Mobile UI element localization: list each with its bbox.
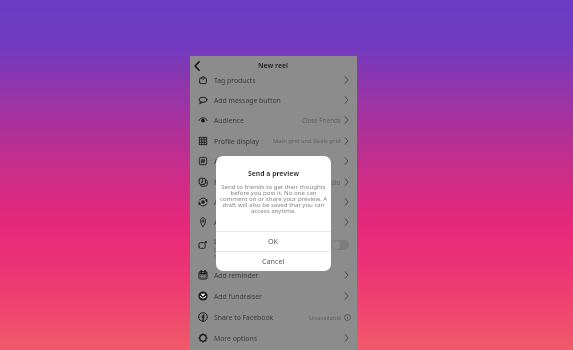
button[interactable]: Add message button: [190, 90, 357, 110]
staticText: Main grid and Reels grid: [273, 137, 341, 145]
button[interactable]: OK: [216, 232, 331, 251]
button[interactable]: Rename audio: [190, 172, 357, 192]
staticText: Unavailable: [309, 314, 342, 322]
staticText: Like and view counts: [214, 237, 281, 246]
staticText: Add location: [214, 218, 255, 227]
button[interactable]: More options: [190, 328, 357, 348]
staticText: More options: [214, 334, 257, 343]
staticText: Original audio: [299, 178, 341, 186]
staticText: Send a preview: [248, 169, 299, 178]
button[interactable]: Add topics: [190, 151, 357, 171]
staticText: Add topics: [214, 157, 248, 166]
staticText: Add reminder: [214, 271, 259, 280]
staticText: Add fundraiser: [214, 292, 262, 301]
button[interactable]: Tag products: [190, 70, 357, 90]
staticText: Profile display: [214, 137, 260, 146]
button[interactable]: Profile display: [190, 131, 357, 151]
staticText: Auto-created Reels: [214, 198, 275, 207]
staticText: Tag products: [214, 76, 256, 85]
button[interactable]: Share to Facebook: [190, 307, 357, 327]
button[interactable]: Toggle like and view counts: [331, 240, 349, 250]
staticText: Add message button: [214, 96, 281, 105]
button[interactable]: Info: [344, 313, 351, 322]
staticText: Cancel: [262, 256, 285, 266]
staticText: Rename audio: [214, 178, 261, 187]
staticText: Share to Facebook: [214, 313, 274, 322]
button[interactable]: Audience: [190, 110, 357, 130]
staticText: New reel: [258, 61, 289, 70]
button[interactable]: Auto-created Reels: [190, 192, 357, 212]
staticText: Others will still be able to see the num…: [214, 246, 287, 260]
staticText: OK: [268, 236, 279, 246]
staticText: Close Friends: [302, 116, 341, 124]
button[interactable]: Add fundraiser: [190, 286, 357, 306]
button[interactable]: Add reminder: [190, 265, 357, 285]
button[interactable]: Add location: [190, 212, 357, 232]
staticText: Audience: [214, 116, 244, 125]
button[interactable]: Cancel: [216, 252, 331, 271]
button[interactable]: Back: [190, 59, 203, 72]
staticText: Send to friends to get their thoughts be…: [218, 182, 329, 215]
button[interactable]: Like and view counts: [190, 232, 357, 258]
